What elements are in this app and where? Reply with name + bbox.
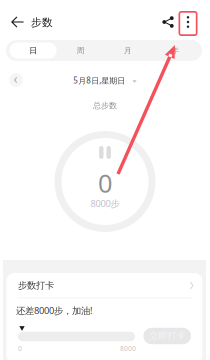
staticText: 8000步 xyxy=(90,197,119,210)
button[interactable]: More options xyxy=(179,10,197,34)
button[interactable]: Back xyxy=(5,9,29,35)
staticText: 周 xyxy=(76,46,84,55)
button[interactable]: 5月8日,星期日 xyxy=(73,75,137,86)
staticText: 8000 xyxy=(120,344,136,353)
staticText: 立即打卡 xyxy=(149,330,185,342)
staticText: 步数打卡 xyxy=(18,280,54,291)
staticText: 月 xyxy=(124,46,132,55)
staticText: 0 xyxy=(98,166,112,200)
button[interactable]: Share xyxy=(157,10,179,34)
staticText: 日 xyxy=(29,46,37,55)
staticText: 0 xyxy=(18,344,22,353)
button[interactable]: 日 xyxy=(9,40,57,61)
button[interactable]: 立即打卡 xyxy=(143,328,191,344)
staticText: 还差8000步，加油! xyxy=(16,304,93,317)
button[interactable]: Previous day xyxy=(9,73,23,87)
staticText: 步数 xyxy=(31,16,53,29)
button[interactable]: 周 xyxy=(57,40,104,61)
button[interactable]: 年 xyxy=(151,40,198,61)
staticText: 总步数 xyxy=(93,101,117,110)
staticText: 年 xyxy=(171,46,179,55)
staticText: 5月8日,星期日 xyxy=(73,75,125,86)
button[interactable]: 月 xyxy=(104,40,151,61)
button[interactable]: 步数打卡 xyxy=(6,273,202,298)
